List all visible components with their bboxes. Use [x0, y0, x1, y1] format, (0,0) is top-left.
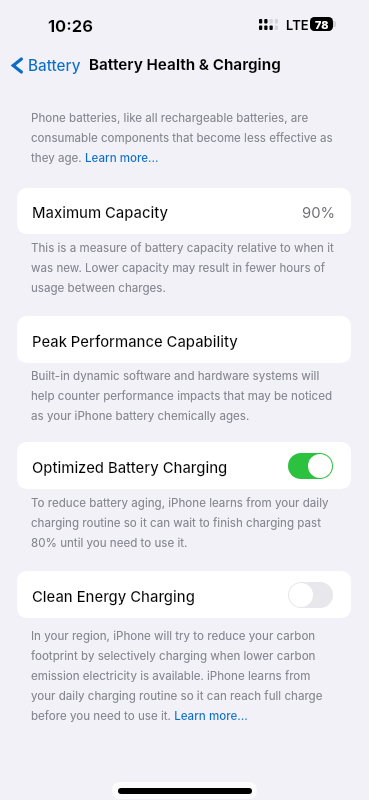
button[interactable]: Battery [9, 52, 84, 79]
staticText: Clean Energy Charging [32, 588, 195, 606]
staticText: This is a measure of battery capacity re… [31, 236, 336, 296]
staticText: Battery [28, 56, 81, 75]
staticText: In your region, iPhone will try to reduc… [31, 624, 336, 724]
staticText: To reduce battery aging, iPhone learns f… [31, 491, 336, 551]
staticText: Optimized Battery Charging [32, 459, 228, 477]
button[interactable]: Optimized Battery Charging [288, 453, 333, 479]
button[interactable]: Optimized Battery Charging [17, 442, 351, 489]
staticText: Phone batteries, like all rechargeable b… [31, 106, 336, 166]
staticText: LTE [286, 17, 309, 33]
button[interactable]: Clean Energy Charging [17, 571, 351, 618]
staticText: Peak Performance Capability [32, 333, 238, 351]
staticText: Built-in dynamic software and hardware s… [31, 364, 336, 424]
button[interactable]: Maximum Capacity [17, 188, 351, 234]
button[interactable]: Peak Performance Capability [17, 316, 351, 363]
staticText: 10:26 [48, 16, 93, 36]
button[interactable]: Clean Energy Charging [288, 582, 333, 608]
staticText: 90% [302, 204, 336, 222]
staticText: Battery Health & Charging [89, 55, 281, 73]
staticText: 78 [315, 18, 329, 31]
staticText: Maximum Capacity [32, 204, 169, 222]
